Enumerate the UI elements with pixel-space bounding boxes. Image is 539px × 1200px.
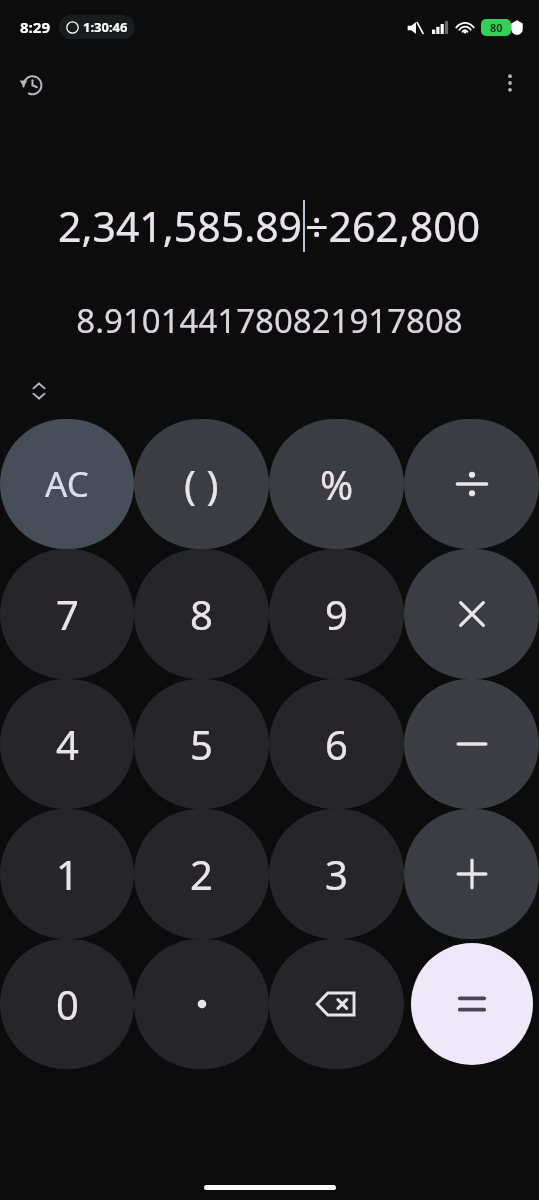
button[interactable]: 5 — [134, 679, 269, 809]
staticText: % — [320, 457, 354, 511]
staticText: 7 — [56, 587, 79, 641]
staticText: 0 — [56, 977, 79, 1031]
button[interactable]: 2 — [134, 809, 269, 939]
staticText: 2 — [190, 847, 213, 901]
button[interactable]: 3 — [269, 809, 404, 939]
staticText: ÷262,800 — [305, 198, 481, 254]
button[interactable]: ( ) — [134, 419, 269, 549]
button[interactable]: 9 — [269, 549, 404, 679]
staticText: ( ) — [184, 457, 219, 511]
button[interactable]: More options — [486, 59, 534, 107]
button[interactable]: 4 — [0, 679, 134, 809]
button[interactable]: 0 — [0, 939, 134, 1069]
button[interactable]: Divide — [404, 419, 539, 549]
staticText: AC — [45, 460, 89, 508]
button[interactable]: % — [269, 419, 404, 549]
staticText: 8 — [190, 587, 213, 641]
button[interactable]: Expand display — [20, 375, 58, 407]
button[interactable]: 6 — [269, 679, 404, 809]
button[interactable]: AC — [0, 419, 134, 549]
staticText: 5 — [190, 717, 213, 771]
button[interactable]: 7 — [0, 549, 134, 679]
button[interactable]: 1 — [0, 809, 134, 939]
button[interactable]: Decimal point — [134, 939, 269, 1069]
button[interactable]: 8 — [134, 549, 269, 679]
button[interactable]: Subtract — [404, 679, 539, 809]
staticText: 6 — [325, 717, 348, 771]
staticText: 80 — [490, 20, 503, 35]
button[interactable]: Backspace — [269, 939, 404, 1069]
staticText: 8:29 — [20, 17, 50, 37]
staticText: 1 — [56, 847, 79, 901]
staticText: 4 — [56, 717, 79, 771]
button[interactable]: Multiply — [404, 549, 539, 679]
button[interactable]: Add — [404, 809, 539, 939]
staticText: 9 — [325, 587, 348, 641]
staticText: 1:30:46 — [83, 18, 128, 36]
staticText: 2,341,585.89 — [58, 198, 303, 254]
button[interactable]: Equals — [411, 943, 533, 1065]
button[interactable]: History — [7, 59, 55, 107]
staticText: 8.9101441780821917808 — [10, 298, 529, 343]
staticText: 3 — [325, 847, 348, 901]
